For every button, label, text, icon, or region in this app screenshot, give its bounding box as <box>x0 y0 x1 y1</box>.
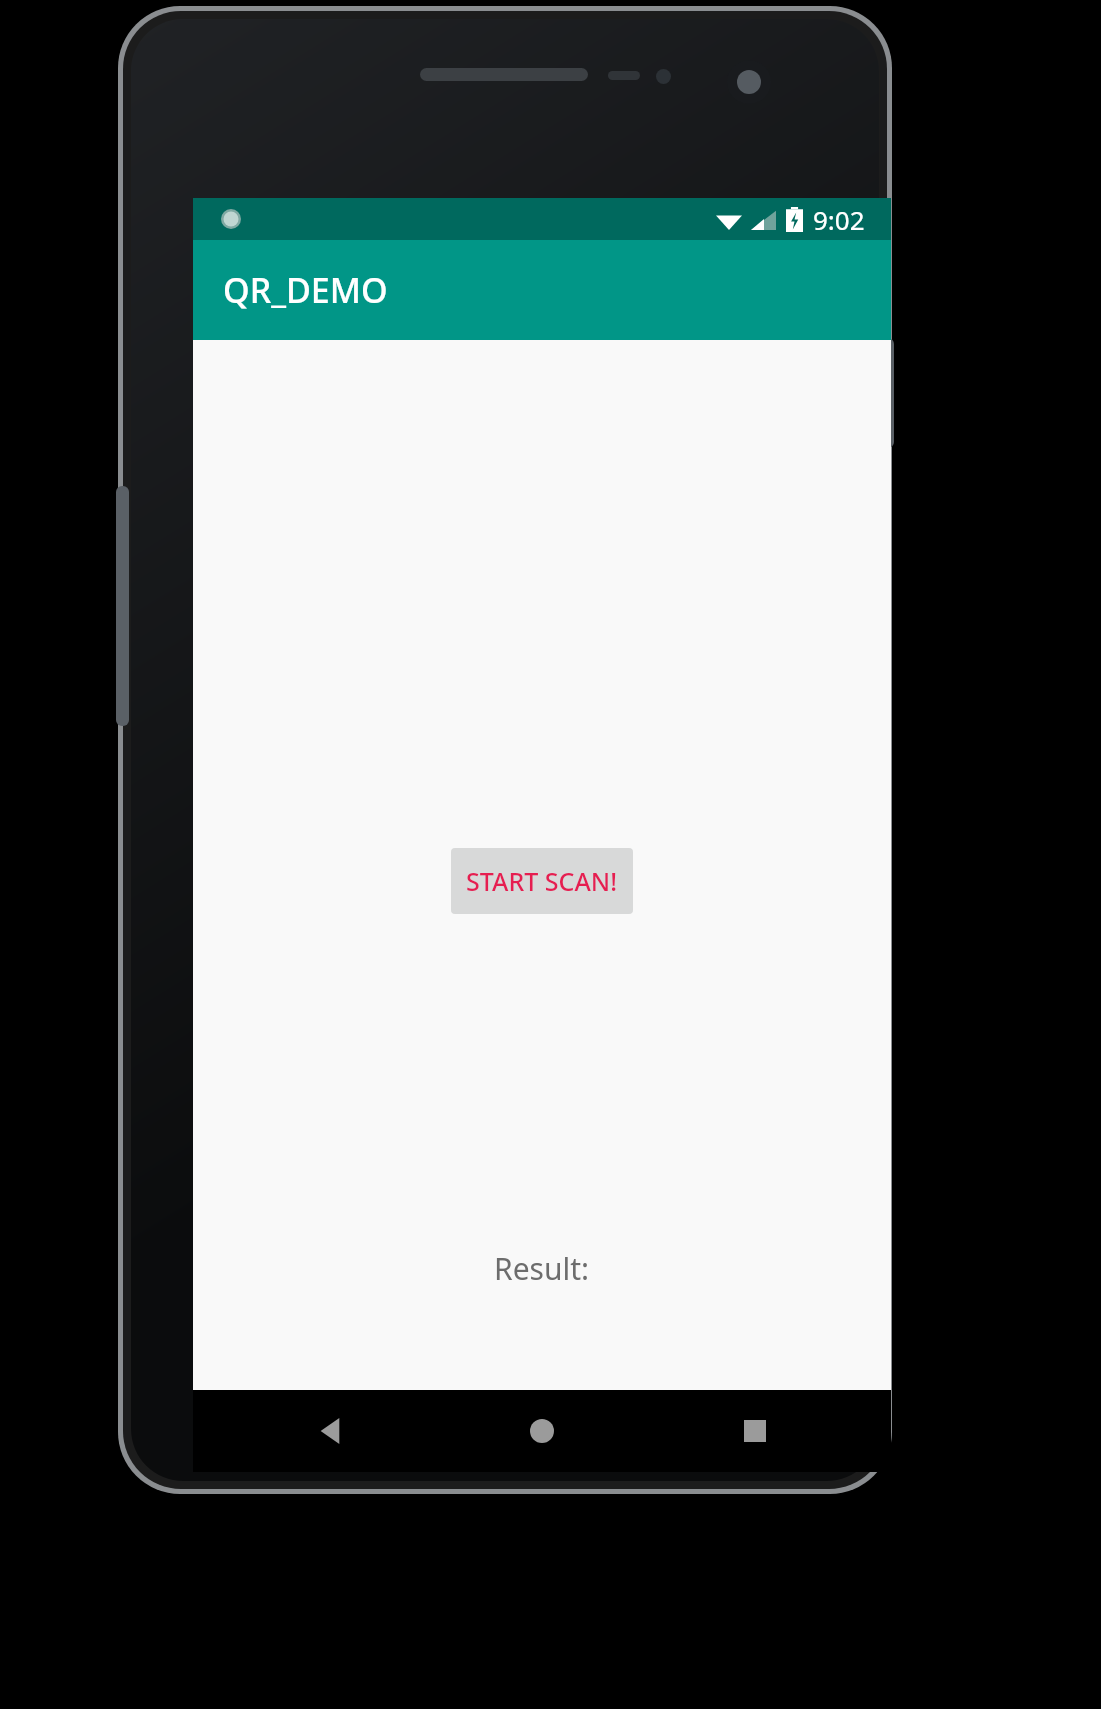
button[interactable]: Home <box>514 1403 570 1459</box>
button[interactable]: Recent apps <box>727 1403 783 1459</box>
button[interactable]: START SCAN! <box>451 848 633 914</box>
staticText: QR_DEMO <box>223 267 388 313</box>
staticText: Result: <box>494 1248 590 1289</box>
staticText: 9:02 <box>813 202 865 237</box>
button[interactable]: Back <box>303 1403 359 1459</box>
staticText: START SCAN! <box>466 864 618 898</box>
